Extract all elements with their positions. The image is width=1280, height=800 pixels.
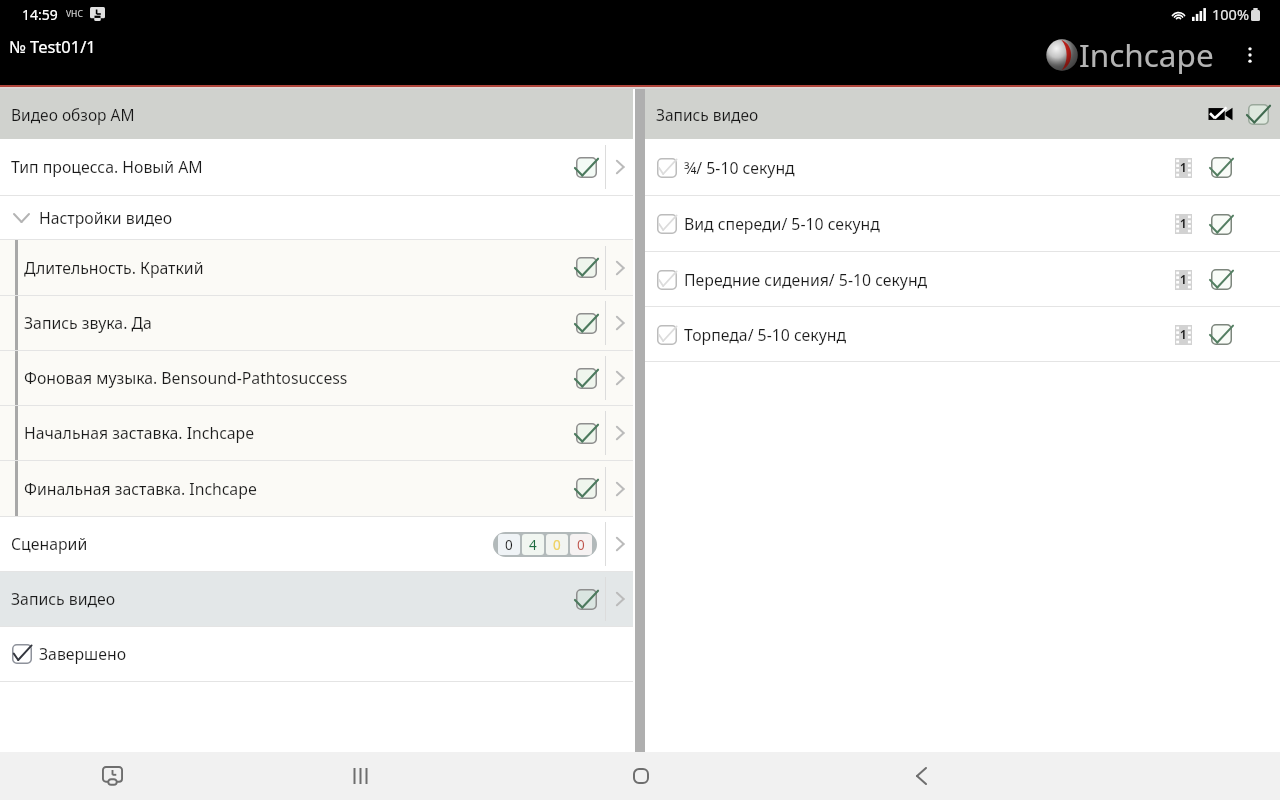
staticText: 0 <box>553 536 561 554</box>
staticText: Фоновая музыка. Bensound-Pathtosuccess <box>24 367 576 389</box>
staticText: Настройки видео <box>39 207 173 229</box>
button[interactable]: Screenshot <box>82 752 142 800</box>
staticText: Торпеда/ 5-10 секунд <box>684 324 1175 346</box>
button[interactable]: Передние сидения/ 5-10 секунд <box>645 252 1280 307</box>
staticText: Длительность. Краткий <box>24 257 576 279</box>
staticText: Запись видео <box>11 588 576 610</box>
button[interactable]: Настройки видео <box>0 196 633 239</box>
button[interactable]: Вид спереди/ 5-10 секунд <box>645 196 1280 252</box>
staticText: Запись звука. Да <box>24 312 576 334</box>
button[interactable]: Back <box>891 752 951 800</box>
staticText: Передние сидения/ 5-10 секунд <box>684 269 1175 291</box>
button[interactable]: Финальная заставка. Inchcape <box>0 461 633 516</box>
staticText: Вид спереди/ 5-10 секунд <box>684 213 1175 235</box>
staticText: Начальная заставка. Inchcape <box>24 422 576 444</box>
staticText: 1 <box>1180 160 1187 176</box>
button[interactable]: 0 <box>493 532 597 557</box>
staticText: Финальная заставка. Inchcape <box>24 478 576 500</box>
button[interactable]: Завершено <box>0 627 633 681</box>
staticText: 0 <box>505 536 513 554</box>
staticText: 1 <box>1180 216 1187 232</box>
staticText: 100% <box>1212 4 1249 24</box>
button[interactable]: Record all videos <box>1204 101 1237 127</box>
button[interactable]: Фоновая музыка. Bensound-Pathtosuccess <box>0 351 633 405</box>
staticText: 0 <box>577 536 585 554</box>
staticText: 1 <box>1180 272 1187 288</box>
staticText: 14:59 <box>22 5 58 24</box>
button[interactable]: Home <box>611 752 671 800</box>
button[interactable]: ¾/ 5-10 секунд <box>645 139 1280 196</box>
button[interactable]: Торпеда/ 5-10 секунд <box>645 307 1280 362</box>
staticText: 1 <box>1180 327 1187 343</box>
button[interactable]: Check all <box>1244 100 1273 129</box>
staticText: 4 <box>529 536 537 554</box>
button[interactable]: Начальная заставка. Inchcape <box>0 406 633 460</box>
staticText: ¾/ 5-10 секунд <box>684 157 1175 179</box>
staticText: Сценарий <box>11 533 493 555</box>
button[interactable]: Тип процесса. Новый АМ <box>0 139 633 195</box>
button[interactable]: Запись видео <box>0 572 633 626</box>
button[interactable]: Запись звука. Да <box>0 296 633 350</box>
staticText: № Test01/1 <box>9 35 96 57</box>
staticText: VHC <box>66 8 83 20</box>
staticText: Видео обзор АМ <box>11 104 135 125</box>
staticText: Запись видео <box>656 104 1204 125</box>
staticText: Завершено <box>39 643 127 665</box>
button[interactable]: More options <box>1232 37 1268 73</box>
button[interactable]: Recent apps <box>330 752 390 800</box>
button[interactable]: Длительность. Краткий <box>0 240 633 295</box>
button[interactable]: Сценарий <box>0 517 633 571</box>
staticText: Тип процесса. Новый АМ <box>11 156 576 178</box>
staticText: Inchcape <box>1079 33 1214 76</box>
